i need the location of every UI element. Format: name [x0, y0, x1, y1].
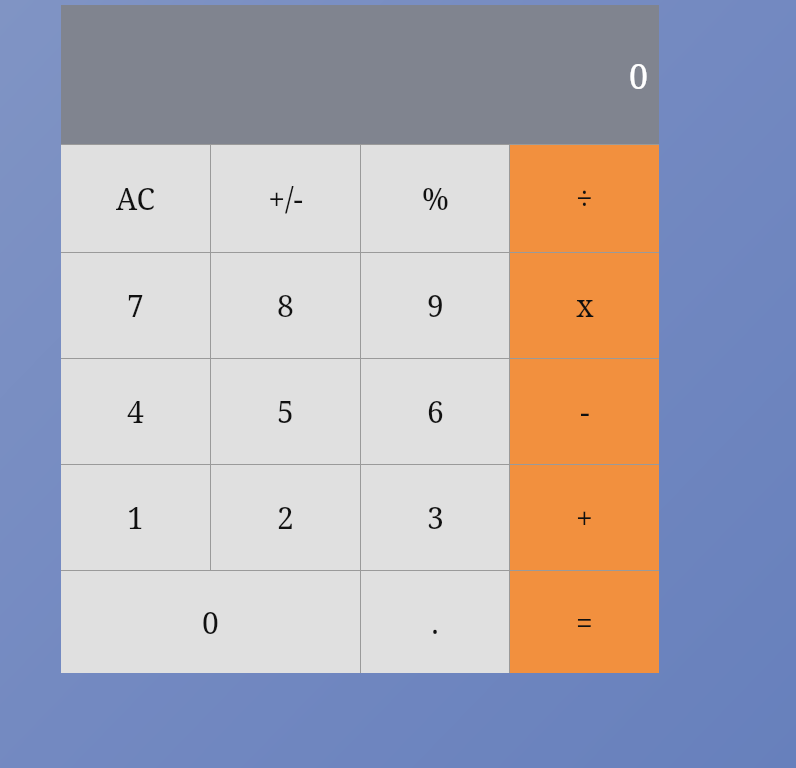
button[interactable]: + — [510, 465, 659, 570]
staticText: - — [580, 391, 590, 432]
button[interactable]: AC — [61, 145, 210, 252]
staticText: 5 — [277, 391, 294, 432]
button[interactable]: 8 — [211, 253, 360, 358]
button[interactable]: - — [510, 359, 659, 464]
staticText: ÷ — [576, 178, 593, 219]
staticText: 9 — [427, 285, 444, 326]
staticText: 6 — [427, 391, 444, 432]
staticText: 7 — [127, 285, 144, 326]
staticText: 4 — [127, 391, 144, 432]
button[interactable]: . — [361, 571, 509, 673]
button[interactable]: +/- — [211, 145, 360, 252]
staticText: 0 — [202, 602, 219, 643]
staticText: AC — [116, 178, 155, 219]
staticText: . — [431, 602, 439, 643]
button[interactable]: 2 — [211, 465, 360, 570]
button[interactable]: ÷ — [510, 145, 659, 252]
staticText: % — [422, 178, 449, 219]
staticText: 2 — [277, 497, 294, 538]
staticText: 3 — [427, 497, 444, 538]
button[interactable]: 4 — [61, 359, 210, 464]
button[interactable]: 6 — [361, 359, 509, 464]
button[interactable]: % — [361, 145, 509, 252]
staticText: = — [576, 602, 593, 643]
button[interactable]: 7 — [61, 253, 210, 358]
button[interactable]: = — [510, 571, 659, 673]
button[interactable]: 9 — [361, 253, 509, 358]
staticText: x — [576, 285, 594, 326]
button[interactable]: 5 — [211, 359, 360, 464]
button[interactable]: 3 — [361, 465, 509, 570]
button[interactable]: x — [510, 253, 659, 358]
staticText: 0 — [628, 53, 648, 99]
staticText: +/- — [268, 178, 303, 219]
staticText: 1 — [127, 497, 144, 538]
button[interactable]: 0 — [61, 571, 360, 673]
button[interactable]: 1 — [61, 465, 210, 570]
staticText: + — [576, 497, 593, 538]
staticText: 8 — [277, 285, 294, 326]
